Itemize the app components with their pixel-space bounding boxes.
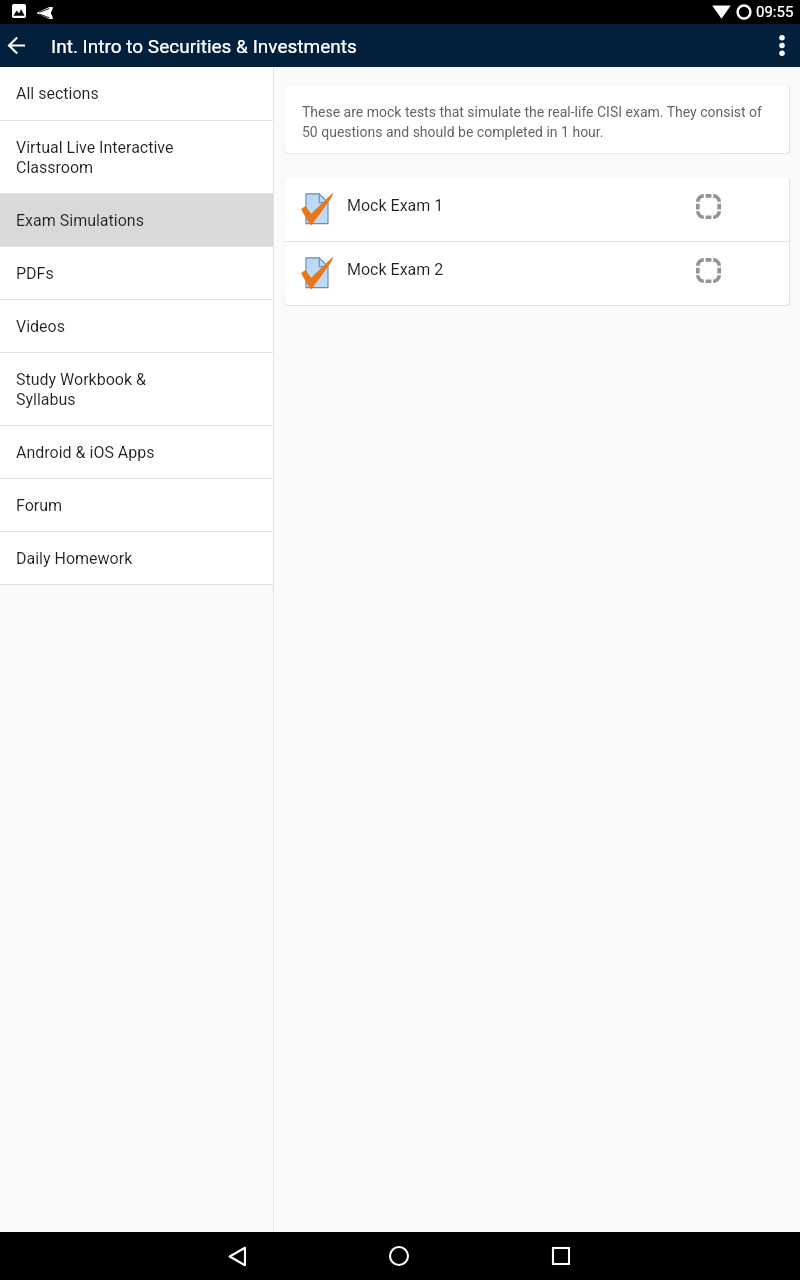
button[interactable]: Navigate up	[0, 29, 33, 62]
button[interactable]: Study Workbook & Syllabus	[0, 353, 273, 426]
button[interactable]: Recent apps	[537, 1232, 585, 1280]
staticText: Videos	[16, 317, 65, 336]
button[interactable]: Virtual Live Interactive Classroom	[0, 121, 273, 194]
staticText: Android & iOS Apps	[16, 443, 155, 462]
button[interactable]: Daily Homework	[0, 532, 273, 585]
button[interactable]: Back	[213, 1232, 261, 1280]
button[interactable]: Videos	[0, 300, 273, 353]
staticText: Mock Exam 2	[347, 260, 444, 279]
staticText: Virtual Live Interactive Classroom	[16, 138, 174, 177]
staticText: Exam Simulations	[16, 211, 144, 230]
button[interactable]: Mock Exam 2	[285, 242, 789, 305]
staticText: All sections	[16, 84, 99, 103]
button[interactable]: PDFs	[0, 247, 273, 300]
staticText: These are mock tests that simulate the r…	[302, 104, 775, 140]
button[interactable]: Download for offline	[684, 182, 732, 230]
staticText: Daily Homework	[16, 549, 133, 568]
staticText: Study Workbook & Syllabus	[16, 370, 146, 409]
button[interactable]: Forum	[0, 479, 273, 532]
staticText: PDFs	[16, 264, 54, 283]
button[interactable]: More options	[764, 24, 800, 67]
staticText: 09:55	[756, 3, 794, 21]
staticText: Forum	[16, 496, 63, 515]
button[interactable]: Android & iOS Apps	[0, 426, 273, 479]
button[interactable]: Download for offline	[684, 246, 732, 294]
staticText: Int. Intro to Securities & Investments	[51, 35, 357, 57]
staticText: Mock Exam 1	[347, 196, 444, 215]
button[interactable]: Mock Exam 1	[285, 178, 789, 241]
button[interactable]: Home	[375, 1232, 423, 1280]
button[interactable]: All sections	[0, 67, 273, 121]
button[interactable]: Exam Simulations	[0, 194, 273, 247]
